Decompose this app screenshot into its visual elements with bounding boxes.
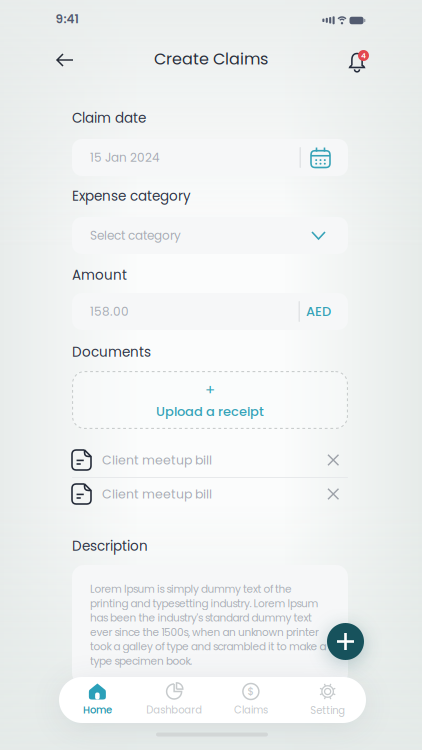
staticText: AED — [306, 302, 331, 321]
staticText: 4 — [361, 50, 366, 61]
button[interactable]: Dashboard — [136, 683, 213, 717]
staticText: Expense category — [72, 187, 191, 205]
button[interactable]: Description — [72, 565, 348, 685]
button[interactable]: + — [72, 371, 348, 429]
staticText: 15 Jan 2024 — [90, 149, 160, 166]
button[interactable]: Setting — [289, 682, 366, 717]
button[interactable]: 158.00 — [72, 293, 348, 330]
button[interactable]: Remove document — [322, 483, 344, 505]
button[interactable]: 15 Jan 2024 — [72, 139, 348, 176]
staticText: Description — [72, 537, 148, 555]
button[interactable]: Home — [59, 683, 136, 717]
staticText: Claim date — [72, 109, 146, 127]
staticText: Create Claims — [154, 48, 268, 70]
staticText: Documents — [72, 343, 151, 361]
staticText: + — [205, 379, 215, 400]
staticText: Dashboard — [146, 703, 202, 717]
staticText: Client meetup bill — [102, 485, 212, 503]
staticText: Amount — [72, 266, 127, 284]
staticText: Client meetup bill — [102, 451, 212, 469]
staticText: Select category — [90, 227, 181, 244]
staticText: Claims — [234, 703, 268, 717]
staticText: Home — [83, 703, 112, 717]
button[interactable]: Notifications — [342, 43, 372, 75]
button[interactable]: Claims — [212, 683, 289, 717]
staticText: Setting — [310, 703, 345, 717]
button[interactable]: Select category — [72, 217, 348, 254]
staticText: Upload a receipt — [156, 402, 264, 421]
button[interactable]: Back — [49, 45, 81, 75]
staticText: 158.00 — [90, 303, 129, 320]
staticText: 9:41 — [55, 11, 78, 27]
button[interactable]: Add claim — [327, 623, 364, 660]
button[interactable]: Remove document — [322, 449, 344, 471]
staticText: Lorem Ipsum is simply dummy text of the … — [90, 582, 326, 668]
staticText: $ — [247, 684, 254, 698]
